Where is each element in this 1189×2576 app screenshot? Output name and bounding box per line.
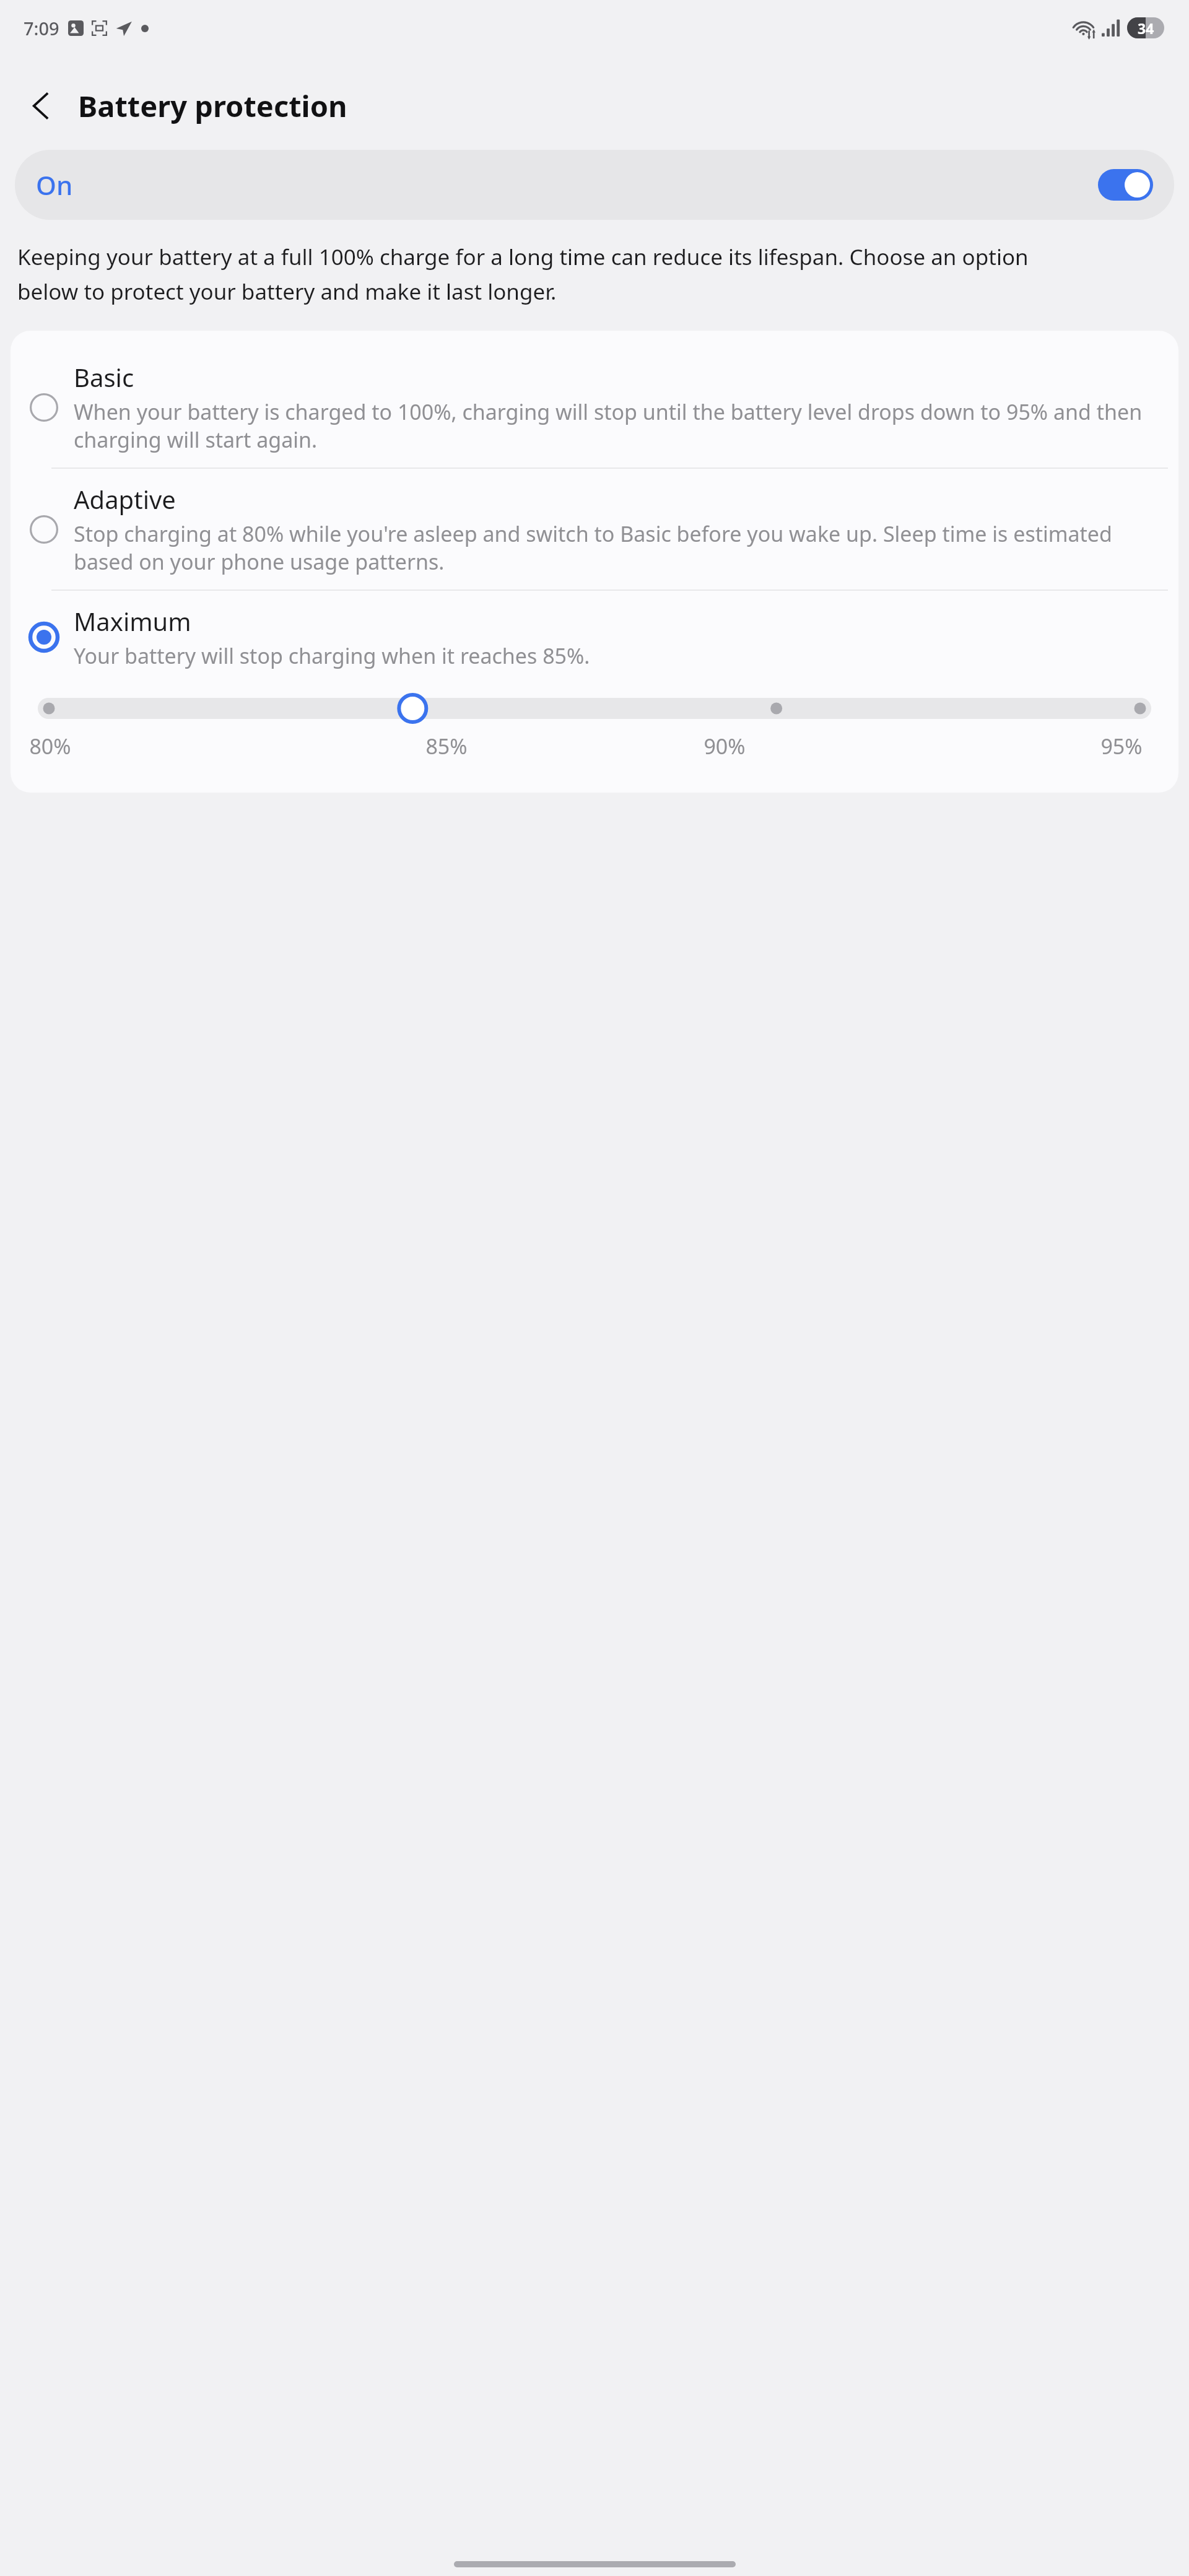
staticText: Basic	[74, 360, 134, 394]
staticText: Keeping your battery at a full 100% char…	[17, 242, 1091, 306]
button[interactable]: Maximum	[11, 591, 1178, 684]
staticText: On	[36, 167, 73, 202]
button[interactable]: On	[15, 150, 1174, 220]
button[interactable]: Back	[15, 79, 68, 133]
staticText: 90%	[703, 732, 746, 760]
button[interactable]: Adaptive	[11, 469, 1178, 590]
staticText: 80%	[29, 732, 71, 760]
staticText: Adaptive	[74, 482, 176, 516]
button[interactable]: Basic	[11, 347, 1178, 468]
staticText: Maximum	[74, 604, 191, 638]
staticText: When your battery is charged to 100%, ch…	[74, 398, 1161, 454]
staticText: 95%	[1100, 732, 1143, 760]
staticText: Stop charging at 80% while you're asleep…	[74, 520, 1161, 576]
staticText: Your battery will stop charging when it …	[74, 642, 590, 670]
staticText: 34	[1138, 19, 1154, 38]
staticText: 85%	[425, 732, 468, 760]
staticText: 7:09	[24, 16, 59, 40]
staticText: Battery protection	[78, 86, 347, 126]
